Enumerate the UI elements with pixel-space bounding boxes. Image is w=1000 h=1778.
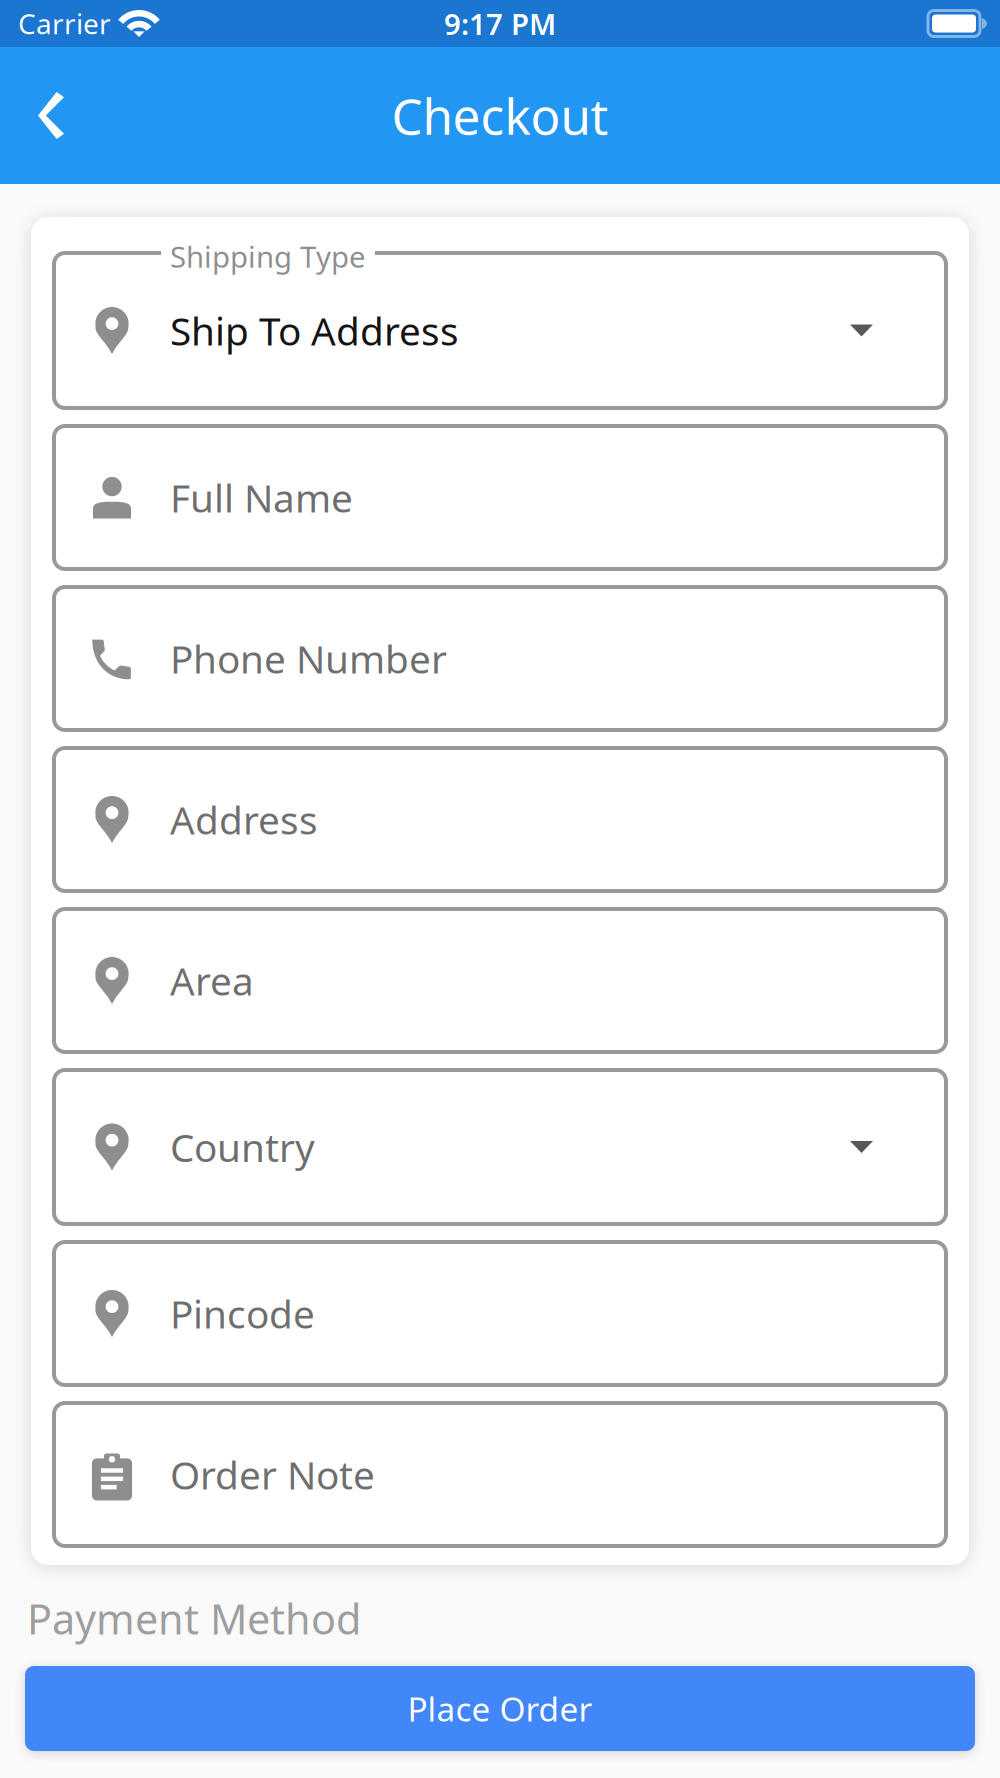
staticText: Carrier [18, 5, 111, 42]
staticText: Full Name [170, 472, 353, 523]
button[interactable]: Order Note [54, 1403, 946, 1546]
button[interactable]: Area [54, 909, 946, 1052]
button[interactable]: Full Name [54, 426, 946, 569]
button[interactable]: Country [54, 1070, 946, 1224]
button[interactable]: Back [0, 47, 94, 184]
staticText: Payment Method [27, 1591, 361, 1646]
staticText: Place Order [407, 1686, 592, 1731]
staticText: Country [170, 1121, 315, 1173]
button[interactable]: Ship To Address [54, 253, 946, 408]
button[interactable]: Address [54, 748, 946, 891]
staticText: Ship To Address [170, 305, 459, 356]
staticText: Phone Number [170, 633, 447, 684]
staticText: Checkout [391, 83, 608, 148]
button[interactable]: Phone Number [54, 587, 946, 730]
button[interactable]: Place Order [25, 1666, 975, 1751]
staticText: 9:17 PM [444, 4, 556, 43]
button[interactable]: Pincode [54, 1242, 946, 1385]
staticText: Address [170, 794, 318, 845]
staticText: Shipping Type [170, 237, 366, 276]
staticText: Pincode [170, 1288, 315, 1339]
staticText: Area [170, 955, 254, 1006]
staticText: Order Note [170, 1449, 375, 1500]
